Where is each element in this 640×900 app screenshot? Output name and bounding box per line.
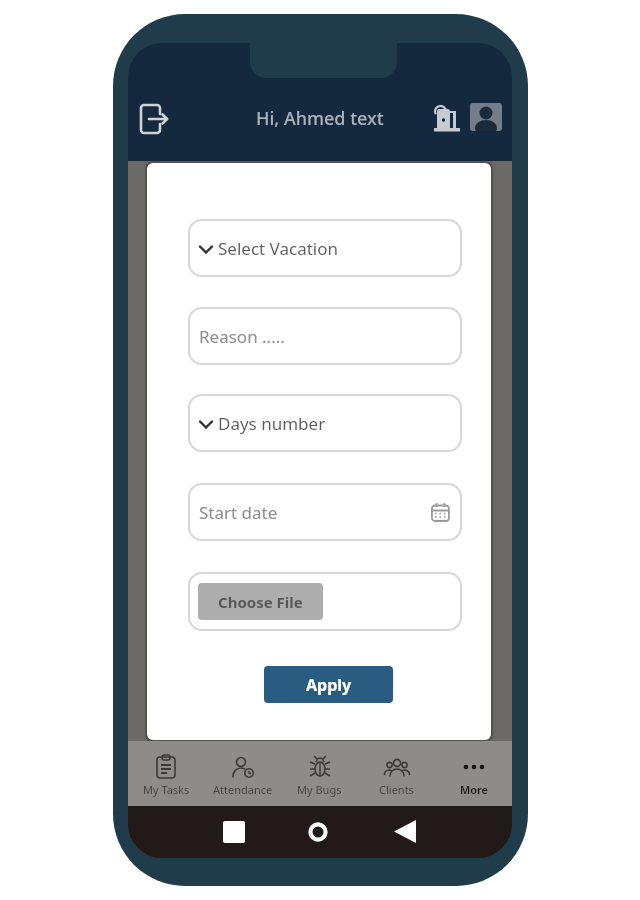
button[interactable]: Attendance — [204, 741, 281, 806]
button[interactable]: Days number — [188, 394, 462, 452]
button[interactable] — [296, 810, 340, 854]
staticText: Clients — [379, 782, 414, 797]
staticText: Start date — [199, 501, 278, 524]
button[interactable]: My Tasks — [128, 741, 204, 806]
button[interactable] — [428, 99, 468, 139]
button[interactable]: Clients — [358, 741, 435, 806]
button[interactable]: More — [435, 741, 512, 806]
button[interactable] — [383, 810, 427, 854]
staticText: Hi, Ahmed text — [256, 106, 384, 131]
staticText: Days number — [218, 412, 326, 435]
staticText: My Bugs — [297, 782, 342, 797]
staticText: My Tasks — [143, 782, 190, 797]
button[interactable]: Choose File — [188, 572, 462, 631]
button[interactable] — [468, 101, 504, 133]
staticText: More — [460, 782, 488, 797]
button[interactable]: Apply — [264, 666, 393, 703]
button[interactable]: Reason ..... — [188, 307, 462, 365]
staticText: Select Vacation — [218, 237, 339, 260]
staticText: Reason ..... — [199, 325, 285, 348]
button[interactable]: Start date — [188, 483, 462, 541]
button[interactable]: Select Vacation — [188, 219, 462, 277]
staticText: Apply — [306, 674, 352, 696]
button[interactable] — [132, 97, 176, 141]
staticText: Attendance — [213, 782, 273, 797]
staticText: Choose File — [218, 592, 303, 612]
button[interactable]: My Bugs — [281, 741, 358, 806]
button[interactable] — [212, 810, 256, 854]
